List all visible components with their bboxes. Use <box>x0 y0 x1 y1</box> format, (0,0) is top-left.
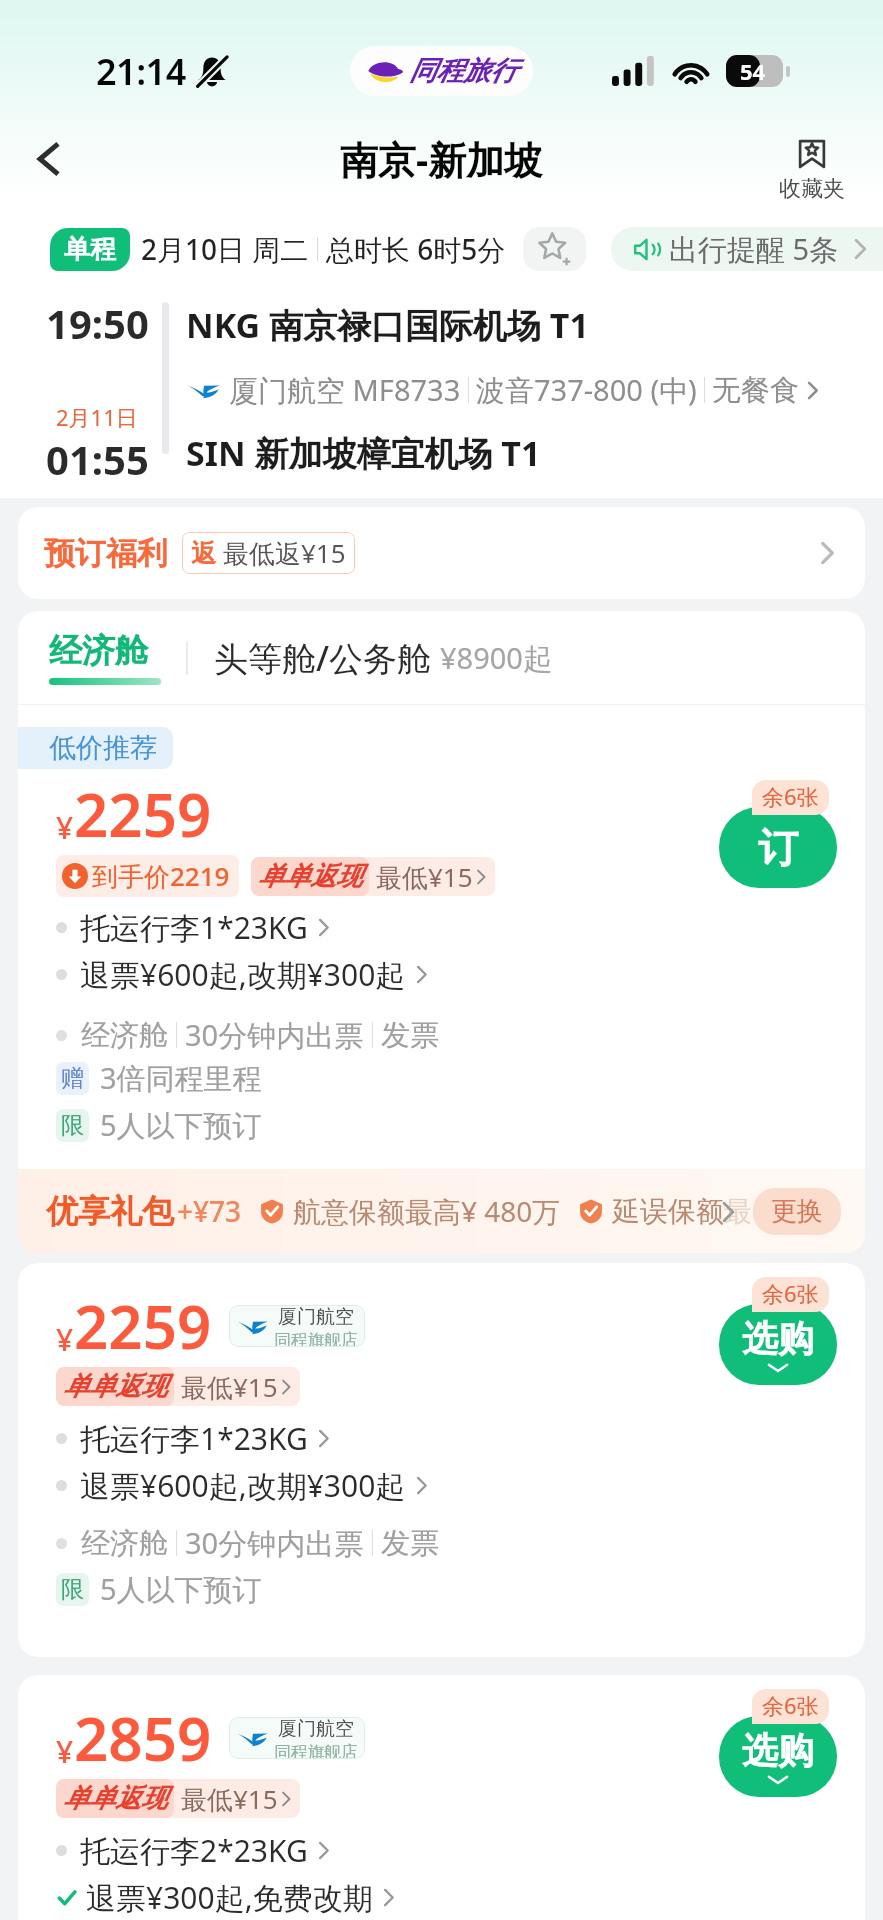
staticText: 到手价2219 <box>92 858 230 894</box>
staticText: ¥8900起 <box>440 638 552 678</box>
staticText: 单单返现 <box>63 1370 167 1403</box>
staticText: 最低返¥15 <box>223 535 346 571</box>
button[interactable]: 经济舱 <box>49 630 161 685</box>
staticText: ¥ <box>56 807 74 848</box>
button[interactable]: 出行提醒 5条 <box>611 227 883 271</box>
staticText: 同程旅行 <box>409 54 517 88</box>
button[interactable]: 订 <box>719 807 837 888</box>
staticText: +¥73 <box>177 1192 242 1230</box>
button[interactable]: 收藏夹 <box>773 134 851 204</box>
staticText: 选购 <box>742 1316 814 1361</box>
button[interactable]: 选购 <box>719 1716 837 1797</box>
button[interactable]: 预订福利 <box>18 507 865 599</box>
staticText: 退票¥300起,免费改期 <box>86 1877 373 1918</box>
button[interactable]: 托运行李1*23KG <box>56 907 333 948</box>
staticText: 限 <box>61 1575 84 1604</box>
button[interactable]: 头等舱/公务舱 <box>214 635 552 681</box>
staticText: 无餐食 <box>712 372 799 409</box>
staticText: 余6张 <box>762 1278 819 1308</box>
staticText: 2月10日 周二 <box>141 230 309 268</box>
staticText: 单单返现 <box>63 1782 167 1815</box>
staticText: 头等舱/公务舱 <box>214 635 432 681</box>
staticText: 托运行李1*23KG <box>80 1418 308 1459</box>
staticText: 托运行李2*23KG <box>80 1830 308 1871</box>
staticText: 2月11日 <box>56 402 138 432</box>
staticText: 单单返现 <box>258 860 362 893</box>
staticText: 低价推荐 <box>49 731 157 765</box>
staticText: 最低¥15 <box>181 1369 278 1405</box>
staticText: 同程旗舰店 <box>274 1742 358 1759</box>
staticText: 同程旗舰店 <box>274 1330 358 1347</box>
button[interactable]: 选购 <box>719 1304 837 1385</box>
staticText: 30分钟内出票 <box>185 1015 364 1055</box>
staticText: 收藏夹 <box>779 175 845 202</box>
staticText: 经济舱 <box>81 1525 168 1562</box>
staticText: 01:55 <box>46 432 149 484</box>
staticText: 发票 <box>381 1525 439 1562</box>
staticText: 最 <box>724 1194 752 1229</box>
button[interactable]: 退票¥600起,改期¥300起 <box>56 1465 431 1506</box>
staticText: 19:50 <box>46 296 149 350</box>
staticText: 30分钟内出票 <box>185 1523 364 1563</box>
staticText: 厦门航空 <box>278 1305 354 1329</box>
staticText: ¥ <box>56 1731 74 1772</box>
staticText: 最低¥15 <box>181 1781 278 1817</box>
button[interactable]: Back <box>12 124 88 194</box>
staticText: 限 <box>61 1111 84 1140</box>
staticText: 航意保额最高¥ 480万 <box>293 1192 561 1230</box>
staticText: 5人以下预订 <box>100 1105 262 1145</box>
staticText: 总时长 6时5分 <box>326 230 506 268</box>
staticText: 21:14 <box>96 47 186 96</box>
staticText: 托运行李1*23KG <box>80 907 308 948</box>
button[interactable]: 收藏 <box>523 227 586 271</box>
staticText: 最低¥15 <box>376 859 473 895</box>
staticText: 厦门航空 <box>278 1717 354 1741</box>
staticText: 南京-新加坡 <box>340 133 543 185</box>
button[interactable]: 厦门航空 MF8733 <box>186 370 822 410</box>
staticText: 单程 <box>64 233 116 266</box>
staticText: 预订福利 <box>44 534 168 573</box>
staticText: 优享礼包 <box>46 1191 174 1231</box>
staticText: 经济舱 <box>49 630 148 672</box>
button[interactable]: 优享礼包 <box>18 1169 865 1253</box>
staticText: 2259 <box>74 773 212 855</box>
staticText: 2859 <box>74 1697 212 1779</box>
button[interactable]: 更换 <box>753 1188 841 1235</box>
staticText: SIN 新加坡樟宜机场 T1 <box>186 430 541 476</box>
staticText: 经济舱 <box>81 1017 168 1054</box>
staticText: 退票¥600起,改期¥300起 <box>80 954 406 995</box>
staticText: 延误保额 <box>612 1194 724 1229</box>
staticText: 5人以下预订 <box>100 1569 262 1609</box>
staticText: 3倍同程里程 <box>100 1058 262 1098</box>
staticText: ¥ <box>56 1319 74 1360</box>
staticText: 发票 <box>381 1017 439 1054</box>
button[interactable]: 托运行李2*23KG <box>56 1830 333 1871</box>
staticText: 余6张 <box>762 1690 819 1720</box>
staticText: 更换 <box>771 1195 823 1228</box>
staticText: 退票¥600起,改期¥300起 <box>80 1465 406 1506</box>
staticText: 54 <box>740 56 766 86</box>
staticText: 余6张 <box>762 781 819 811</box>
staticText: 赠 <box>61 1064 84 1093</box>
button[interactable]: 退票¥300起,免费改期 <box>56 1877 398 1918</box>
staticText: 出行提醒 5条 <box>669 229 839 269</box>
staticText: 订 <box>758 823 798 873</box>
button[interactable]: 托运行李1*23KG <box>56 1418 333 1459</box>
staticText: 2259 <box>74 1285 212 1367</box>
staticText: 选购 <box>742 1728 814 1773</box>
staticText: 返 <box>191 538 216 569</box>
staticText: 波音737-800 (中) <box>476 370 697 410</box>
staticText: NKG 南京禄口国际机场 T1 <box>186 302 589 348</box>
button[interactable]: 退票¥600起,改期¥300起 <box>56 954 431 995</box>
staticText: 厦门航空 MF8733 <box>229 370 461 410</box>
